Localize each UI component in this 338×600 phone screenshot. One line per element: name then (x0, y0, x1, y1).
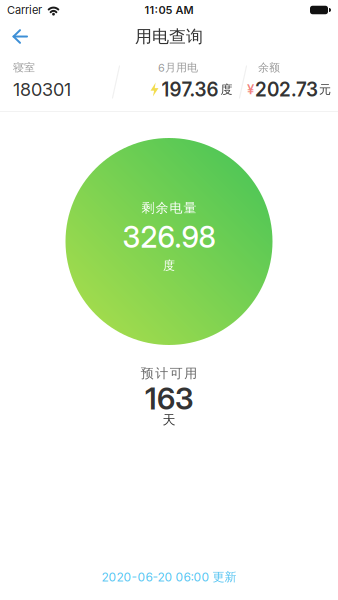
staticText: Carrier (7, 3, 42, 16)
staticText: 180301 (13, 79, 71, 100)
staticText: 202.73 (255, 78, 318, 101)
staticText: 11:05 AM (144, 3, 193, 16)
button[interactable]: 2020-06-20 06:00 更新 (101, 570, 236, 584)
staticText: 度 (163, 258, 175, 273)
staticText: 163 (145, 381, 193, 416)
button[interactable]: Back (0, 19, 28, 53)
staticText: 天 (162, 412, 175, 428)
staticText: 寝室 (13, 61, 35, 74)
staticText: 剩余电量 (141, 200, 196, 216)
staticText: 6月用电 (158, 61, 198, 74)
staticText: 度 (220, 82, 232, 97)
staticText: 余额 (258, 61, 280, 74)
staticText: 预计可用 (141, 365, 197, 381)
staticText: 326.98 (122, 220, 215, 254)
staticText: 元 (319, 82, 331, 97)
staticText: 197.36 (161, 78, 218, 101)
staticText: 2020-06-20 06:00 更新 (101, 570, 236, 584)
staticText: ¥ (247, 82, 254, 97)
staticText: 用电查询 (135, 26, 203, 47)
